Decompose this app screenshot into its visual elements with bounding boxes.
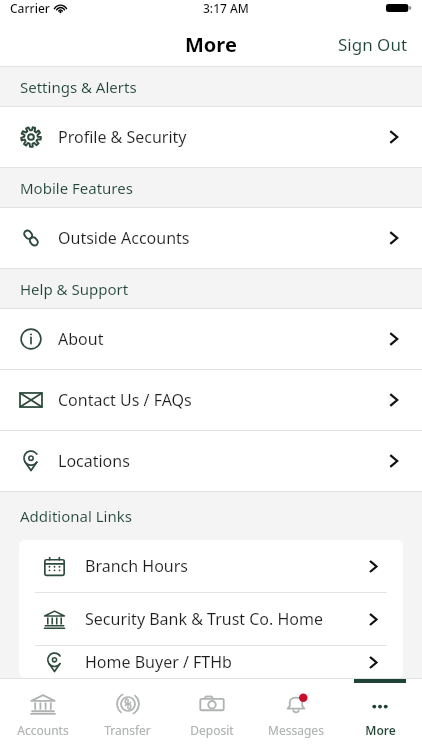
button[interactable]: Contact Us / FAQs — [0, 370, 422, 430]
other: Messages — [283, 691, 309, 717]
button[interactable]: About — [0, 309, 422, 369]
button[interactable]: Branch Hours — [19, 540, 403, 592]
button[interactable]: Security Bank & Trust Co. Home — [19, 593, 403, 645]
button[interactable]: Accounts — [0, 679, 85, 750]
staticText: Home Buyer / FTHb — [85, 651, 232, 673]
button[interactable]: Home Buyer / FTHb — [19, 646, 403, 678]
staticText: Security Bank & Trust Co. Home — [85, 608, 324, 630]
other: More — [367, 691, 393, 717]
staticText: About — [58, 328, 104, 350]
other: Deposit — [199, 691, 225, 717]
staticText: Contact Us / FAQs — [58, 389, 192, 411]
staticText: Settings & Alerts — [20, 77, 137, 97]
staticText: Outside Accounts — [58, 227, 190, 249]
staticText: More — [185, 31, 237, 58]
staticText: Messages — [268, 722, 324, 738]
staticText: Sign Out — [338, 33, 408, 56]
staticText: Additional Links — [20, 506, 132, 526]
other: Accounts — [30, 691, 56, 717]
staticText: Mobile Features — [20, 178, 133, 198]
button[interactable]: Transfer — [85, 679, 170, 750]
button[interactable]: Locations — [0, 431, 422, 491]
staticText: 3:17 AM — [203, 0, 249, 16]
staticText: Help & Support — [20, 279, 129, 299]
staticText: Deposit — [190, 722, 234, 738]
button[interactable]: Deposit — [170, 679, 254, 750]
other: Transfer — [115, 691, 141, 717]
button[interactable]: Outside Accounts — [0, 208, 422, 268]
staticText: Accounts — [17, 722, 69, 738]
button[interactable]: More — [338, 679, 422, 750]
button[interactable]: Sign Out — [324, 25, 422, 64]
button[interactable]: Profile & Security — [0, 107, 422, 167]
staticText: More — [365, 722, 396, 738]
staticText: Locations — [58, 450, 130, 472]
staticText: Profile & Security — [58, 126, 187, 148]
staticText: Carrier — [10, 0, 50, 16]
button[interactable]: Messages — [254, 679, 338, 750]
staticText: Transfer — [104, 722, 151, 738]
staticText: Branch Hours — [85, 555, 188, 577]
